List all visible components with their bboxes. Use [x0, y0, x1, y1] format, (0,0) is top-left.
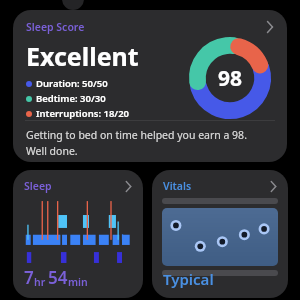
staticText: 54 — [48, 266, 68, 289]
button[interactable]: Open Sleep Score — [263, 20, 277, 34]
button[interactable]: Open Vitals — [267, 180, 280, 193]
staticText: Duration: 50/50 — [36, 77, 108, 90]
staticText: Vitals — [163, 179, 192, 193]
staticText: Bedtime: 30/30 — [36, 92, 106, 105]
button[interactable]: Vitals — [152, 170, 288, 298]
staticText: 7 — [24, 266, 34, 289]
staticText: min — [68, 275, 88, 289]
staticText: Sleep — [24, 179, 52, 193]
staticText: hr — [34, 275, 48, 289]
staticText: Interruptions: 18/20 — [36, 107, 130, 120]
button[interactable]: Open Sleep — [122, 180, 135, 193]
staticText: Well done. — [26, 144, 78, 158]
staticText: Sleep Score — [26, 20, 85, 34]
button[interactable]: Sleep — [13, 170, 143, 298]
staticText: Getting to bed on time helped you earn a… — [26, 128, 247, 142]
staticText: Excellent — [26, 39, 139, 73]
staticText: 98 — [218, 64, 243, 93]
button[interactable]: Sleep Score — [13, 10, 287, 162]
staticText: Typical — [163, 269, 214, 289]
